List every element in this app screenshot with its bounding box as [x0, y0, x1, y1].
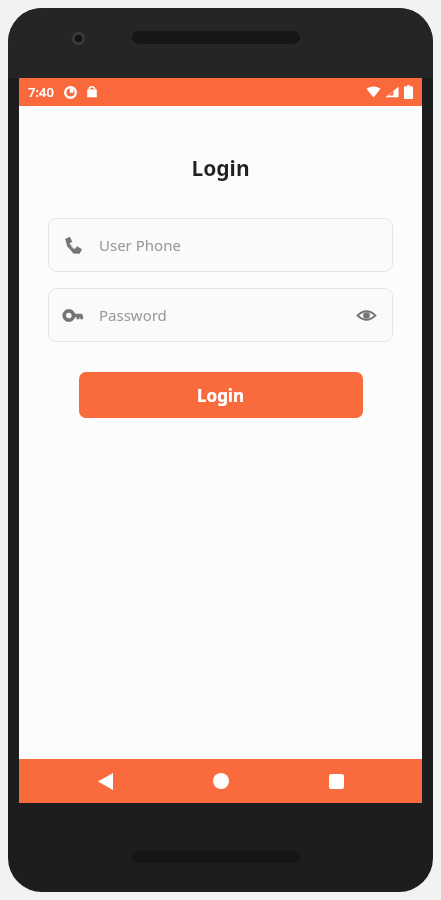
other: Phone	[64, 236, 83, 255]
button[interactable]: Home	[191, 759, 251, 803]
button[interactable]: Phone	[48, 218, 393, 272]
staticText: Login	[197, 384, 245, 407]
staticText: Password	[99, 305, 355, 325]
staticText: Login	[191, 154, 250, 183]
button[interactable]: Login	[79, 372, 363, 418]
other: Password	[64, 306, 83, 325]
staticText: User Phone	[99, 235, 377, 255]
button[interactable]: Recent apps	[306, 759, 366, 803]
button[interactable]: Password	[48, 288, 393, 342]
button[interactable]: Back	[75, 759, 135, 803]
staticText: 7:40	[28, 83, 54, 101]
button[interactable]: Show password	[355, 304, 377, 326]
